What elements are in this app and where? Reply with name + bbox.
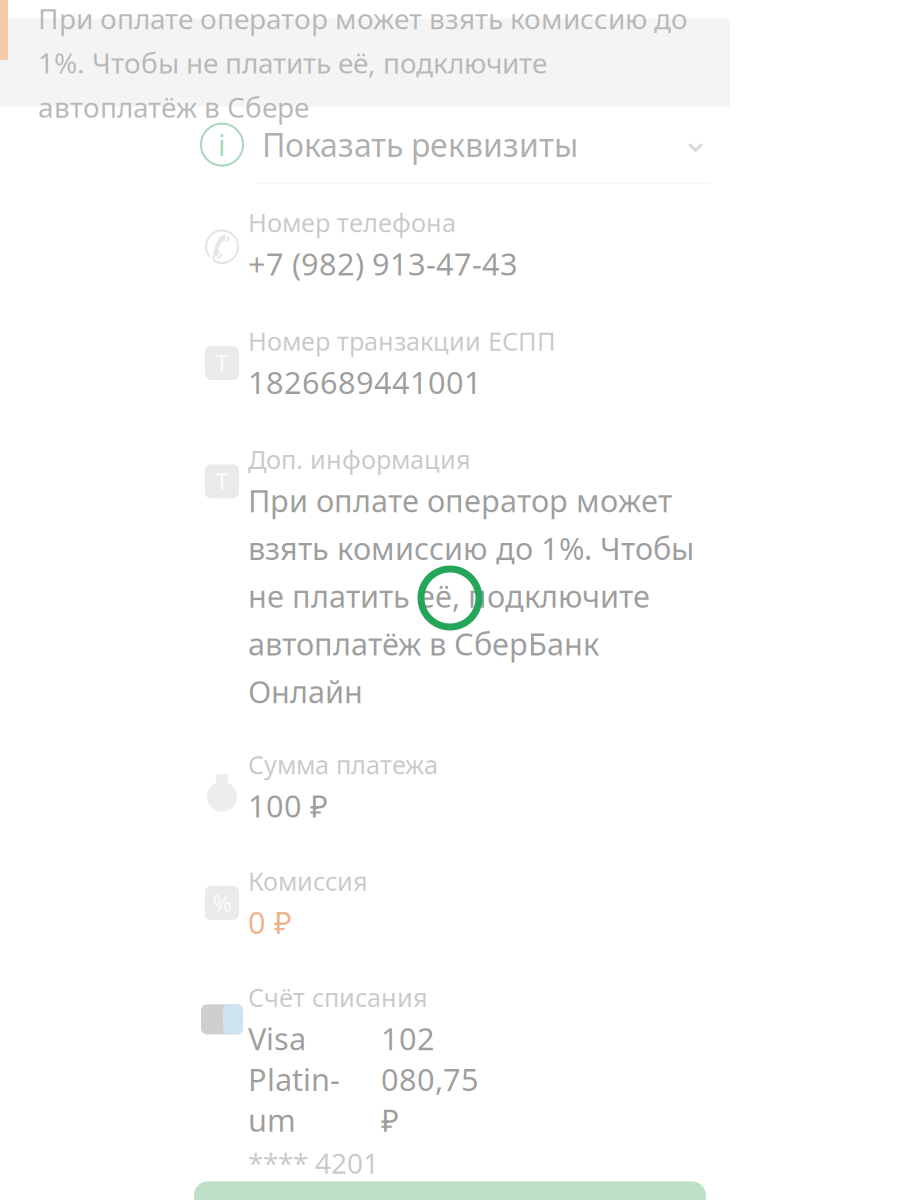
staticText: T — [215, 348, 228, 378]
staticText: Доп. информация — [248, 442, 471, 476]
staticText: 1826689441001 — [248, 362, 482, 402]
staticText: 102 080,75 ₽ — [381, 1018, 479, 1140]
staticText: Показать реквизиты — [262, 123, 578, 166]
button[interactable]: i — [0, 107, 900, 183]
button[interactable]: Оплатить 100 ₽ — [194, 1181, 706, 1200]
staticText: Visa Platinum — [248, 1018, 340, 1140]
staticText: Сумма платежа — [248, 748, 438, 781]
staticText: Номер телефона — [248, 206, 456, 239]
staticText: ⌄ — [681, 120, 710, 159]
staticText: При оплате оператор может взять комиссию… — [38, 0, 688, 125]
staticText: i — [218, 125, 226, 164]
staticText: Комиссия — [248, 864, 368, 898]
staticText: % — [212, 888, 231, 918]
staticText: Счёт списания — [248, 980, 428, 1014]
staticText: **** 4201 — [248, 1144, 379, 1181]
staticText: ✆ — [203, 222, 241, 273]
staticText: +7 (982) 913-47-43 — [248, 243, 518, 284]
staticText: При оплате оператор может взять комиссию… — [248, 480, 694, 712]
staticText: 0 ₽ — [248, 902, 292, 942]
staticText: 100 ₽ — [248, 785, 328, 826]
staticText: T — [215, 466, 228, 496]
staticText: Номер транзакции ЕСПП — [248, 324, 556, 358]
